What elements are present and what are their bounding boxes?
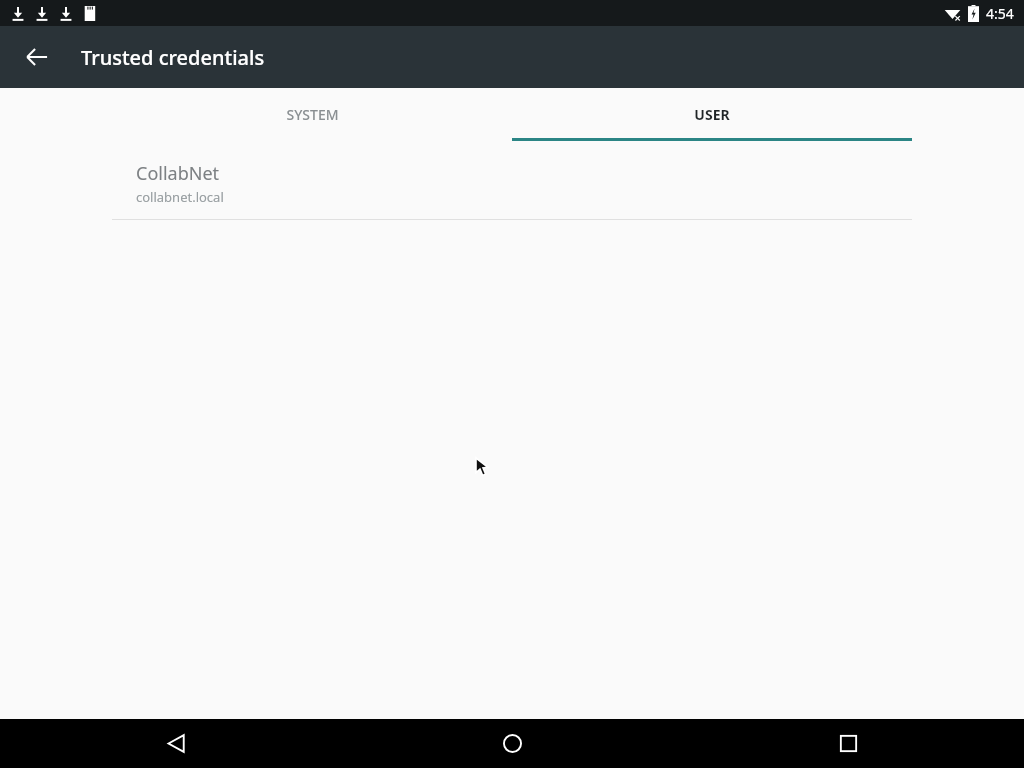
button[interactable]: Home [484, 719, 540, 768]
staticText: collabnet.local [136, 188, 224, 206]
button[interactable]: Recent apps [820, 719, 876, 768]
button[interactable]: Back [13, 33, 61, 81]
staticText: USER [694, 105, 730, 124]
button[interactable]: SYSTEM [112, 88, 512, 152]
staticText: CollabNet [136, 161, 220, 186]
button[interactable]: CollabNet [0, 152, 1024, 220]
staticText: SYSTEM [286, 105, 339, 124]
button[interactable]: USER [512, 88, 912, 152]
button[interactable]: Back [148, 719, 204, 768]
staticText: Trusted credentials [81, 44, 265, 71]
staticText: 4:54 [986, 4, 1014, 23]
